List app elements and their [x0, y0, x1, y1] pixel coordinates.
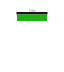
staticText: Title [28, 8, 35, 13]
